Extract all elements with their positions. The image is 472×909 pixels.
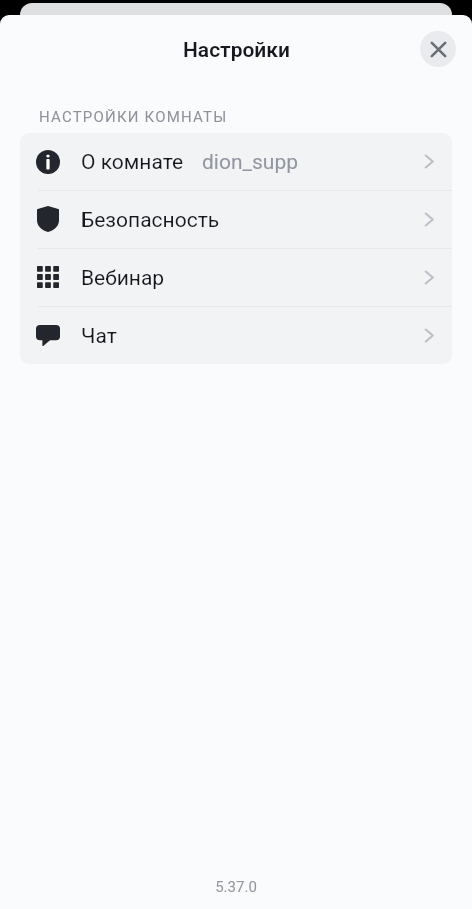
staticText: Безопасность <box>81 208 220 233</box>
button[interactable]: Вебинар <box>20 249 452 306</box>
staticText: О комнате <box>81 150 184 175</box>
staticText: НАСТРОЙКИ КОМНАТЫ <box>39 108 228 126</box>
button[interactable]: Безопасность <box>20 191 452 248</box>
staticText: Вебинар <box>81 266 165 291</box>
button[interactable]: Close <box>420 31 456 67</box>
staticText: Настройки <box>183 38 290 63</box>
staticText: Чат <box>81 324 117 349</box>
button[interactable]: Чат <box>20 307 452 364</box>
staticText: 5.37.0 <box>215 878 257 896</box>
button[interactable]: О комнате <box>20 133 452 190</box>
staticText: dion_supp <box>202 150 298 175</box>
